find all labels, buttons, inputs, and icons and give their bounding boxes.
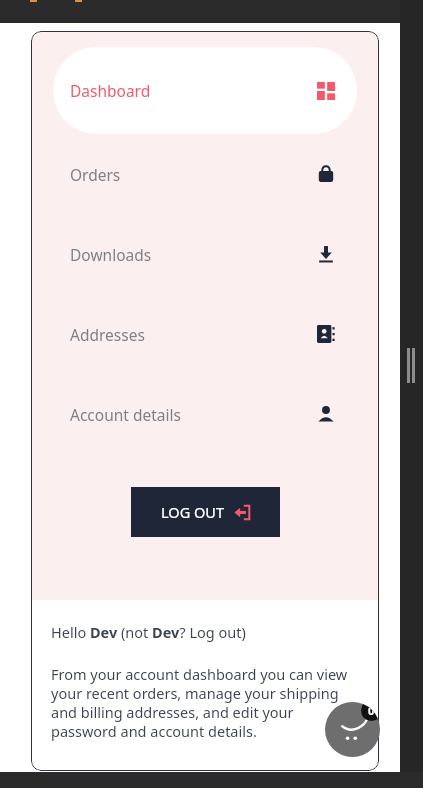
staticText: Orders [70, 164, 121, 185]
button[interactable]: Dashboard [53, 47, 357, 134]
staticText: Downloads [70, 244, 152, 265]
staticText: LOG OUT [161, 502, 224, 522]
staticText: From your account dashboard you can view… [51, 664, 359, 742]
button[interactable]: Shopping cart [325, 702, 380, 757]
staticText: Addresses [70, 324, 145, 345]
button[interactable]: Account details [31, 374, 379, 454]
button[interactable]: Addresses [31, 294, 379, 374]
staticText: Hello Dev (not Dev? Log out) [51, 622, 246, 642]
staticText: 0 [368, 703, 375, 718]
button[interactable]: Orders [31, 134, 379, 214]
staticText: Dashboard [70, 80, 151, 101]
staticText: Account details [70, 404, 181, 425]
button[interactable]: Downloads [31, 214, 379, 294]
button[interactable]: LOG OUT [131, 487, 280, 537]
